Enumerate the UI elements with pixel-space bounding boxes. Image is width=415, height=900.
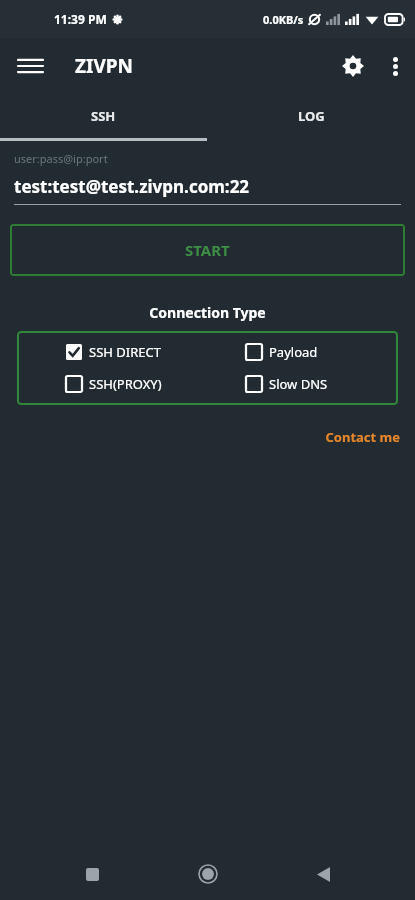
button[interactable]: Recent apps [70,852,114,896]
staticText: 11:39 PM [54,11,107,27]
button[interactable]: Back [301,852,345,896]
staticText: LOG [298,107,325,125]
staticText: Payload [269,343,318,361]
button[interactable]: Settings [331,44,375,88]
button[interactable]: More options [375,46,415,86]
staticText: START [185,240,230,260]
button[interactable]: Contact me [0,428,400,446]
staticText: 0.0KB/s [263,12,304,27]
staticText: Slow DNS [269,375,328,393]
staticText: SSH DIRECT [89,343,161,361]
staticText: user:pass@ip:port [14,151,108,166]
button[interactable]: Home [186,852,230,896]
button[interactable]: Payload [246,343,318,361]
button[interactable]: LOG [207,94,415,138]
button[interactable]: SSH [0,94,207,138]
button[interactable]: START [10,224,405,276]
button[interactable]: SSH DIRECT [66,343,161,361]
staticText: ZIVPN [75,53,133,79]
button[interactable]: Slow DNS [246,375,328,393]
staticText: SSH(PROXY) [89,375,162,393]
staticText: Connection Type [0,303,415,322]
button[interactable]: user:pass@ip:port [14,151,401,205]
button[interactable]: Open navigation menu [10,46,50,86]
button[interactable]: SSH(PROXY) [66,375,162,393]
staticText: SSH [91,107,116,125]
staticText: test:test@test.zivpn.com:22 [14,175,250,198]
